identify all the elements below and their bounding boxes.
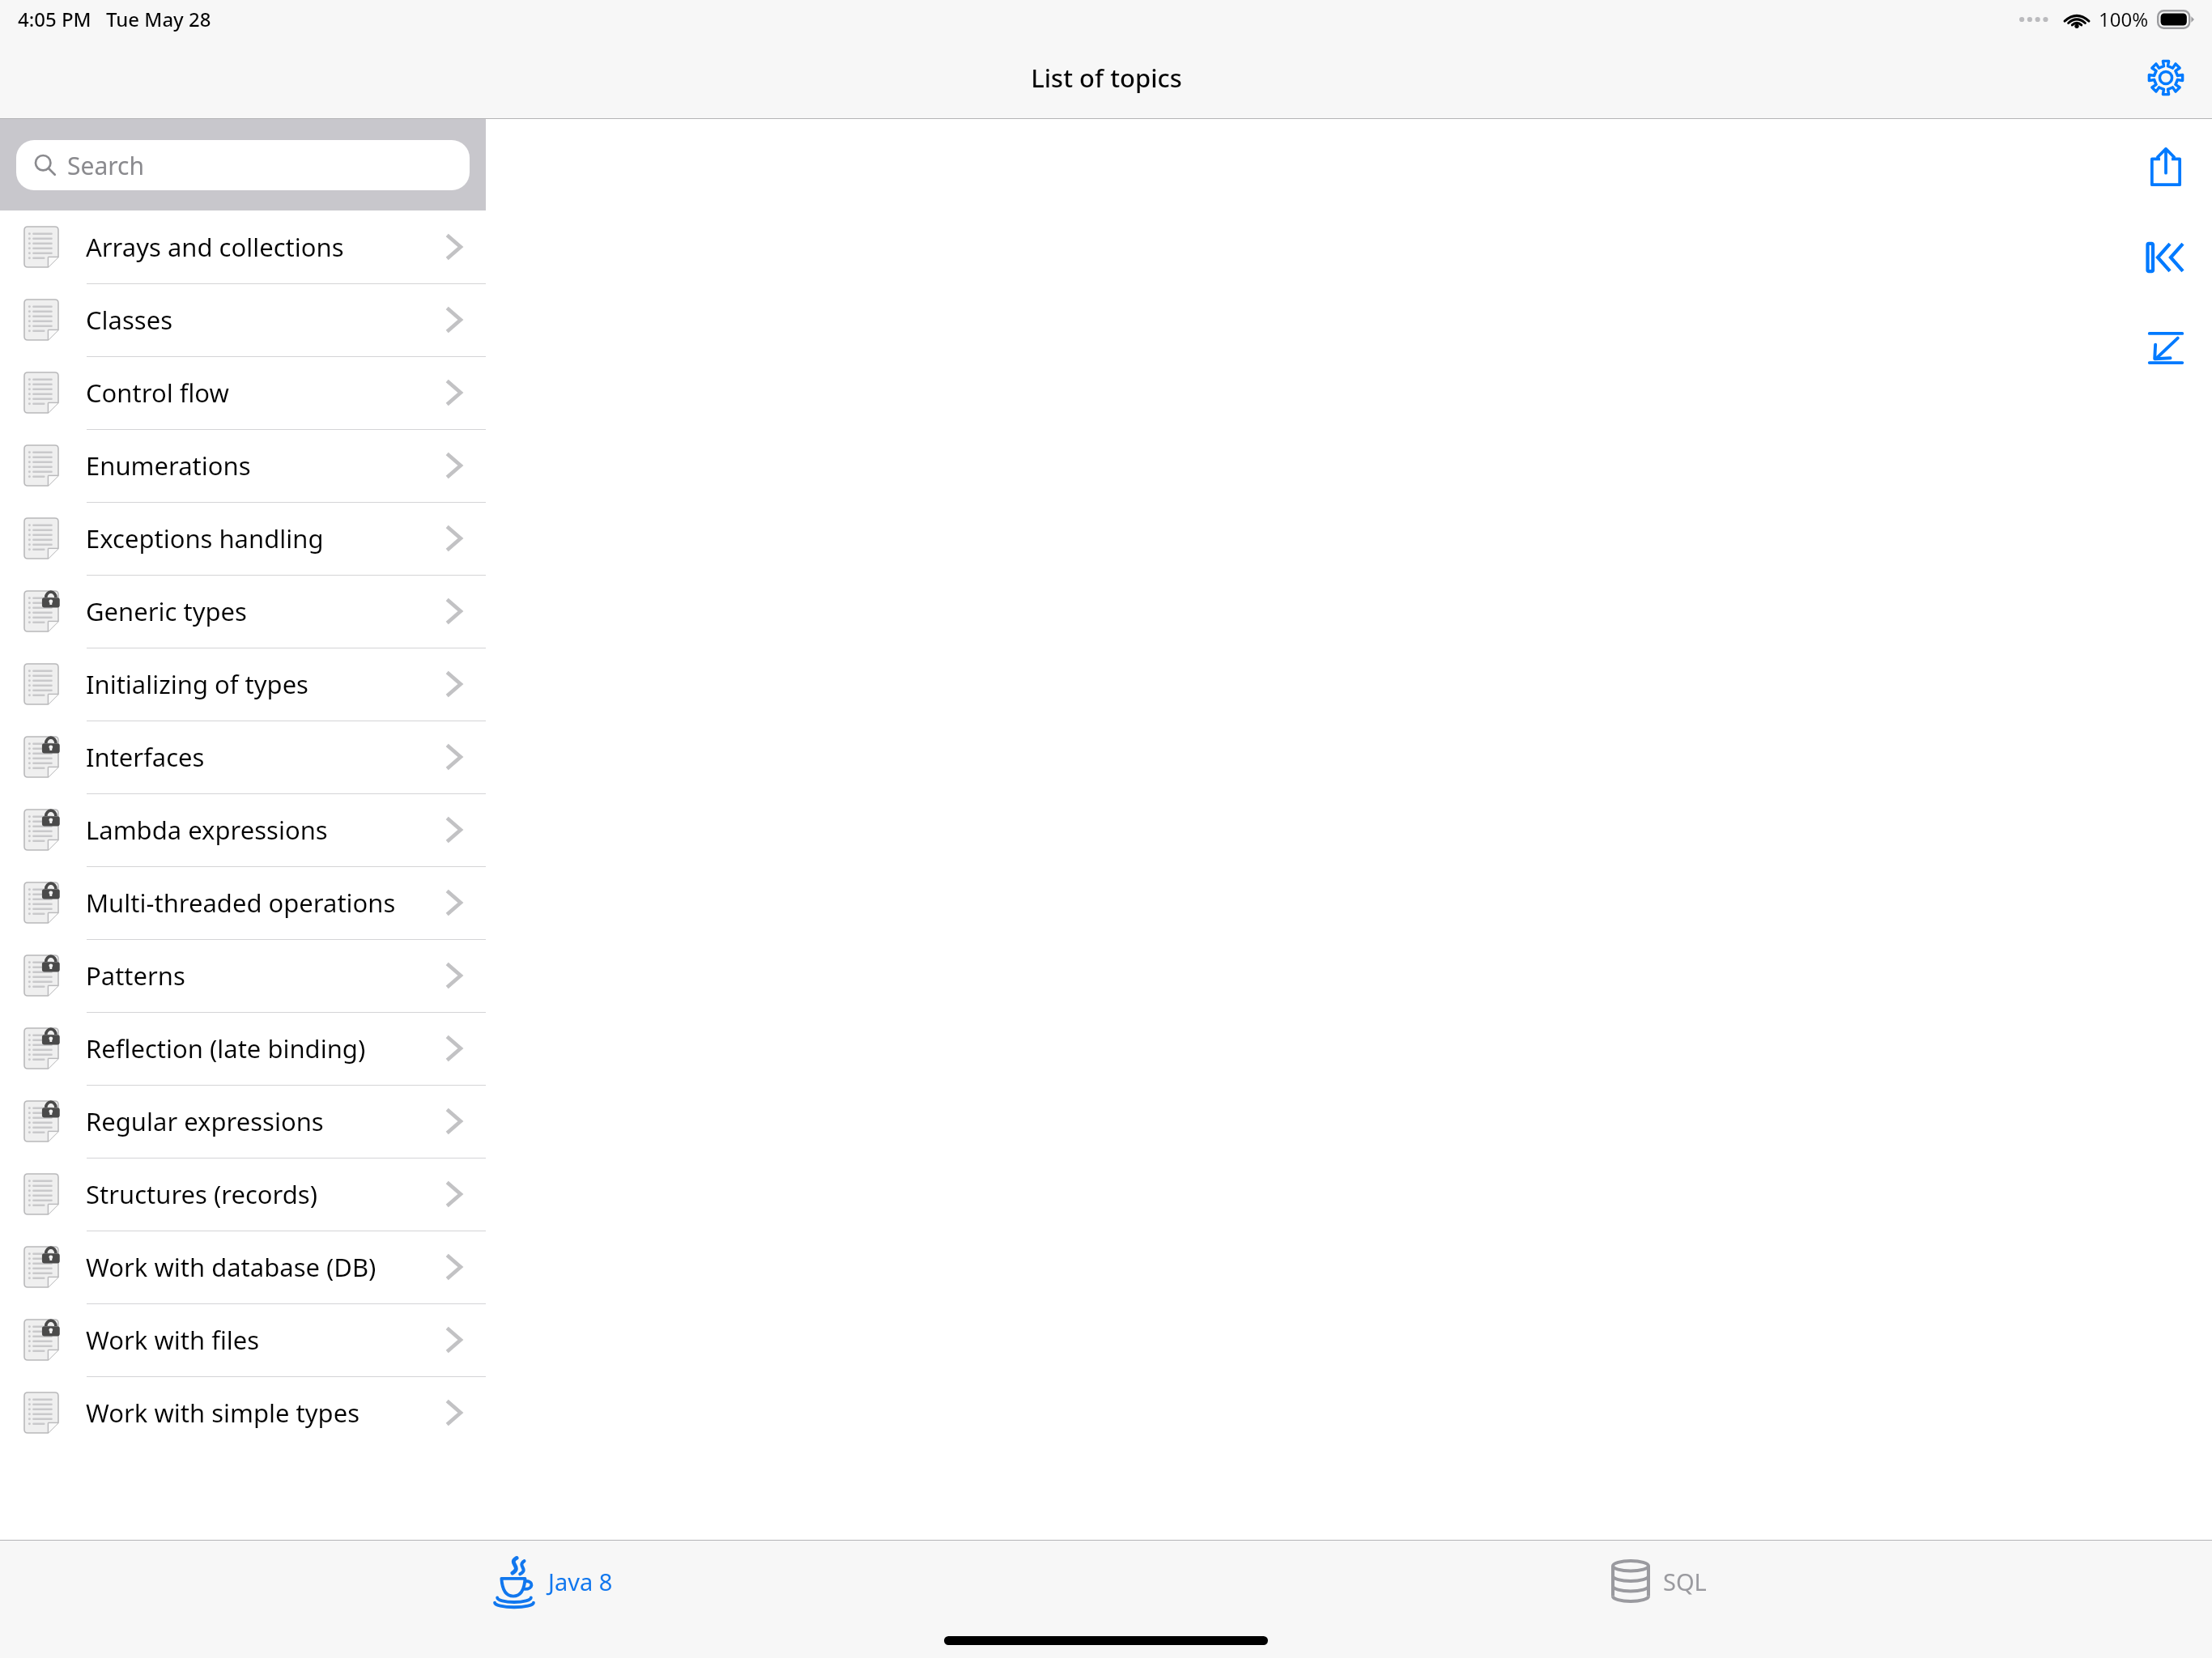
staticText: Exceptions handling <box>86 521 445 555</box>
button[interactable]: SQL <box>1592 1551 1726 1611</box>
staticText: Search <box>67 149 144 182</box>
staticText: Interfaces <box>86 740 445 774</box>
staticText: Tue May 28 <box>106 6 211 32</box>
button[interactable]: Settings <box>2131 43 2201 113</box>
button[interactable]: Multi-threaded operations <box>0 866 486 939</box>
button[interactable]: Java 8 <box>474 1548 632 1614</box>
staticText: Lambda expressions <box>86 813 445 847</box>
button[interactable]: Work with simple types <box>0 1376 486 1449</box>
button[interactable]: Regular expressions <box>0 1085 486 1158</box>
button[interactable]: Interfaces <box>0 721 486 793</box>
staticText: Work with simple types <box>86 1396 445 1430</box>
button[interactable]: Work with files <box>0 1303 486 1376</box>
button[interactable]: Patterns <box>0 939 486 1012</box>
button[interactable]: Structures (records) <box>0 1158 486 1231</box>
staticText: Multi-threaded operations <box>86 886 445 920</box>
staticText: Patterns <box>86 959 445 993</box>
button[interactable]: Search <box>16 140 470 190</box>
staticText: Work with files <box>86 1323 445 1357</box>
staticText: Enumerations <box>86 449 445 483</box>
button[interactable]: Exceptions handling <box>0 502 486 575</box>
button[interactable]: Share <box>2131 132 2201 202</box>
staticText: SQL <box>1663 1566 1707 1597</box>
button[interactable]: Control flow <box>0 356 486 429</box>
staticText: Java 8 <box>548 1566 613 1597</box>
staticText: Arrays and collections <box>86 230 445 264</box>
button[interactable]: Enumerations <box>0 429 486 502</box>
staticText: Work with database (DB) <box>86 1250 445 1284</box>
staticText: 100% <box>2099 6 2149 32</box>
button[interactable]: Collapse sidebar <box>2131 223 2201 292</box>
staticText: Generic types <box>86 594 445 628</box>
staticText: 4:05 PM <box>18 6 91 32</box>
staticText: List of topics <box>1031 61 1182 95</box>
button[interactable]: Work with database (DB) <box>0 1231 486 1303</box>
button[interactable]: Arrays and collections <box>0 210 486 283</box>
button[interactable]: Initializing of types <box>0 648 486 721</box>
staticText: Initializing of types <box>86 667 445 701</box>
button[interactable]: Reflection (late binding) <box>0 1012 486 1085</box>
button[interactable]: Import <box>2131 313 2201 383</box>
staticText: Reflection (late binding) <box>86 1031 445 1065</box>
staticText: Structures (records) <box>86 1177 445 1211</box>
staticText: Control flow <box>86 376 445 410</box>
staticText: Classes <box>86 303 445 337</box>
staticText: Regular expressions <box>86 1104 445 1138</box>
button[interactable]: Classes <box>0 283 486 356</box>
button[interactable]: Generic types <box>0 575 486 648</box>
button[interactable]: Lambda expressions <box>0 793 486 866</box>
